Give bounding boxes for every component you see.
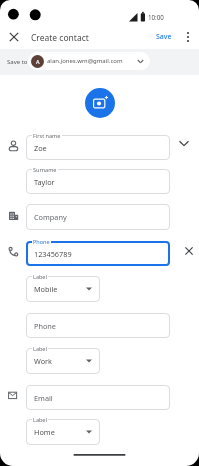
staticText: Create contact — [31, 32, 89, 44]
staticText: A — [36, 58, 40, 65]
button[interactable]: A — [28, 52, 150, 70]
button[interactable] — [177, 136, 191, 150]
staticText: Home — [34, 427, 55, 437]
staticText: Zoe — [34, 143, 47, 153]
staticText: Company — [34, 212, 67, 222]
staticText: Phone — [34, 321, 56, 331]
staticText: Label — [33, 345, 47, 352]
staticText: Phone — [33, 238, 50, 245]
staticText: Work — [34, 356, 52, 366]
staticText: Label — [33, 273, 47, 280]
button[interactable] — [182, 29, 194, 45]
button[interactable] — [8, 31, 20, 43]
staticText: Label — [33, 416, 47, 423]
button[interactable]: Home — [26, 419, 100, 445]
staticText: Email — [34, 393, 53, 403]
button[interactable]: Mobile — [26, 276, 100, 302]
staticText: alan.jones.wm@gmail.com — [47, 57, 123, 65]
button[interactable]: Taylor — [26, 169, 170, 194]
button[interactable]: Email — [26, 385, 170, 410]
button[interactable] — [182, 244, 196, 258]
button[interactable] — [85, 88, 115, 118]
button[interactable]: Work — [26, 348, 100, 374]
button[interactable]: Save — [150, 29, 178, 45]
button[interactable]: 123456789 — [26, 241, 170, 266]
staticText: Mobile — [34, 284, 58, 294]
staticText: 10:00 — [148, 13, 164, 21]
staticText: Save to — [7, 58, 28, 66]
button[interactable]: Zoe — [26, 135, 170, 160]
staticText: First name — [33, 132, 61, 139]
staticText: Surname — [33, 166, 57, 173]
button[interactable]: Company — [26, 204, 170, 230]
button[interactable]: Phone — [26, 313, 170, 338]
staticText: Taylor — [34, 177, 55, 187]
staticText: 123456789 — [34, 249, 72, 259]
staticText: Save — [156, 32, 172, 42]
